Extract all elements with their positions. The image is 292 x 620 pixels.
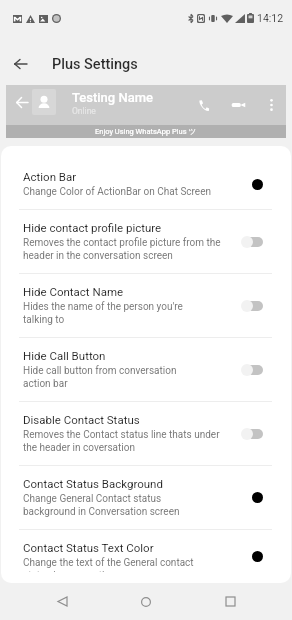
staticText: Hide Call Button	[23, 349, 106, 362]
button[interactable]: Action Bar	[1, 159, 291, 209]
staticText: Hide call button from conversation actio…	[23, 365, 177, 390]
staticText: Testing Name	[72, 90, 153, 105]
staticText: Removes the contact profile picture from…	[23, 237, 221, 262]
button[interactable]: More options	[258, 92, 284, 118]
staticText: Removes the Contact status line thats un…	[23, 429, 220, 454]
staticText: Change Color of ActionBar on Chat Screen	[23, 186, 211, 198]
button[interactable]: Hide contact profile picture	[1, 210, 291, 273]
button[interactable]: Video call	[225, 92, 251, 118]
button[interactable]: Recents	[208, 583, 252, 620]
staticText: Online	[72, 106, 96, 116]
staticText: Enjoy Using WhatsApp Plus ツ	[95, 127, 197, 136]
button[interactable]: Call	[191, 92, 217, 118]
staticText: Plus Settings	[52, 56, 138, 73]
button[interactable]: Home	[124, 583, 168, 620]
button[interactable]: Disable Contact Status	[1, 402, 291, 465]
staticText: Change the text of the General contact s…	[23, 557, 194, 572]
button[interactable]: Hide Call Button	[1, 338, 291, 401]
button[interactable]: Back	[40, 583, 84, 620]
staticText: 14:12	[257, 12, 284, 24]
staticText: Action Bar	[23, 170, 77, 183]
staticText: Hide Contact Name	[23, 285, 124, 298]
button[interactable]: Contact Status Text Color	[1, 530, 291, 583]
button[interactable]: Back	[0, 44, 40, 84]
staticText: Contact Status Background	[23, 477, 163, 490]
button[interactable]: Hide Contact Name	[1, 274, 291, 337]
button[interactable]: Contact Status Background	[1, 466, 291, 529]
staticText: Change General Contact status background…	[23, 493, 180, 518]
staticText: Hides the name of the person you're talk…	[23, 301, 183, 326]
staticText: Contact Status Text Color	[23, 541, 154, 554]
staticText: Hide contact profile picture	[23, 221, 162, 234]
staticText: Disable Contact Status	[23, 413, 140, 426]
